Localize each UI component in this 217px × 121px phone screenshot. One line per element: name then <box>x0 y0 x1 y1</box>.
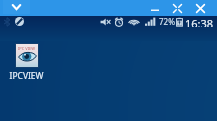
staticText: IPCVIEW <box>9 70 44 82</box>
staticText: 72% <box>159 16 175 27</box>
staticText: 16:38 <box>185 16 214 27</box>
button[interactable]: Close <box>189 0 212 16</box>
button[interactable]: Maximize <box>166 0 189 16</box>
staticText: IPC VIEW <box>18 46 36 51</box>
button[interactable]: Expand <box>3 0 30 14</box>
button[interactable]: IPC VIEW <box>9 43 44 82</box>
button[interactable]: Minimize <box>143 0 166 16</box>
